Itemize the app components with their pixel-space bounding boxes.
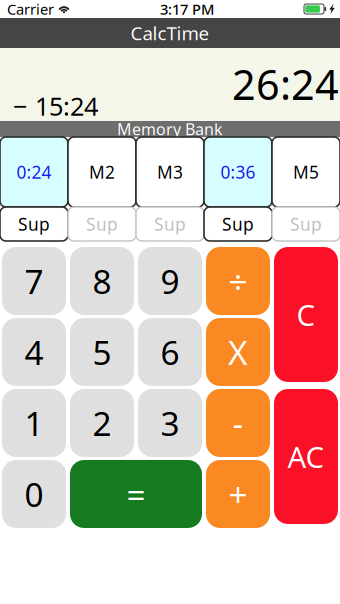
button[interactable]: 8 <box>70 247 134 315</box>
staticText: Sup <box>154 212 186 235</box>
staticText: 9 <box>160 259 179 303</box>
staticText: − <box>13 89 27 123</box>
button[interactable]: + <box>206 460 270 528</box>
button[interactable]: 9 <box>138 247 202 315</box>
button[interactable]: Sup <box>68 207 136 241</box>
staticText: - <box>232 401 243 445</box>
button[interactable]: 5 <box>70 318 134 386</box>
button[interactable]: 3 <box>138 389 202 457</box>
staticText: M2 <box>89 160 115 183</box>
staticText: 15:24 <box>35 89 98 123</box>
staticText: = <box>126 472 145 516</box>
button[interactable]: 0:36 <box>204 137 272 207</box>
button[interactable]: 0:24 <box>0 137 68 207</box>
button[interactable]: M5 <box>272 137 340 207</box>
staticText: Sup <box>86 212 118 235</box>
button[interactable]: - <box>206 389 270 457</box>
staticText: 26:24 <box>232 57 339 111</box>
staticText: 6 <box>160 330 179 374</box>
staticText: 0:24 <box>16 160 51 183</box>
staticText: 0 <box>24 472 43 516</box>
staticText: 3 <box>160 401 179 445</box>
staticText: M5 <box>293 160 319 183</box>
staticText: Carrier <box>7 0 54 19</box>
staticText: 5 <box>92 330 111 374</box>
button[interactable]: 0 <box>2 460 66 528</box>
button[interactable]: X <box>206 318 270 386</box>
staticText: AC <box>287 437 324 476</box>
staticText: Sup <box>290 212 322 235</box>
staticText: X <box>228 330 248 374</box>
button[interactable]: = <box>70 460 202 528</box>
button[interactable]: Sup <box>204 207 272 241</box>
staticText: 1 <box>24 401 43 445</box>
button[interactable]: 1 <box>2 389 66 457</box>
button[interactable]: 4 <box>2 318 66 386</box>
button[interactable]: AC <box>274 389 338 524</box>
button[interactable]: Sup <box>0 207 68 241</box>
staticText: 0:36 <box>220 160 255 183</box>
staticText: 7 <box>24 259 43 303</box>
staticText: Memory Bank <box>117 118 223 140</box>
staticText: 8 <box>92 259 111 303</box>
button[interactable]: Sup <box>136 207 204 241</box>
staticText: 2 <box>92 401 111 445</box>
button[interactable]: Sup <box>272 207 340 241</box>
staticText: C <box>296 295 315 334</box>
staticText: Sup <box>222 212 254 235</box>
staticText: M3 <box>157 160 183 183</box>
button[interactable]: M3 <box>136 137 204 207</box>
staticText: 3:17 PM <box>160 0 214 19</box>
staticText: + <box>228 472 247 516</box>
staticText: Sup <box>18 212 50 235</box>
staticText: 4 <box>24 330 43 374</box>
staticText: CalcTime <box>130 21 209 45</box>
button[interactable]: ÷ <box>206 247 270 315</box>
button[interactable]: 6 <box>138 318 202 386</box>
staticText: ÷ <box>228 259 247 303</box>
button[interactable]: C <box>274 247 338 382</box>
button[interactable]: 2 <box>70 389 134 457</box>
button[interactable]: M2 <box>68 137 136 207</box>
button[interactable]: 7 <box>2 247 66 315</box>
